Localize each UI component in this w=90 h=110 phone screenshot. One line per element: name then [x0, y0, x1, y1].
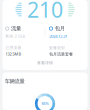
staticText: 套餐类型	[49, 45, 65, 50]
staticText: 85%	[41, 101, 48, 106]
staticText: 流量	[11, 25, 21, 32]
button[interactable]: 查看详情	[2, 60, 87, 66]
staticText: 剩余 2.1GB	[5, 33, 25, 39]
staticText: 2024-12-31	[49, 33, 67, 39]
staticText: 已用流量	[5, 45, 21, 50]
staticText: 132.5MB	[5, 51, 21, 57]
staticText: 查看详情	[37, 60, 53, 65]
staticText: 210	[27, 0, 63, 24]
staticText: 包月流量套餐	[49, 52, 73, 56]
staticText: 包月	[55, 25, 65, 32]
staticText: 车辆流量	[4, 78, 24, 85]
